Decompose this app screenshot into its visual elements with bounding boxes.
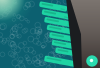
button[interactable] xyxy=(0,0,100,68)
